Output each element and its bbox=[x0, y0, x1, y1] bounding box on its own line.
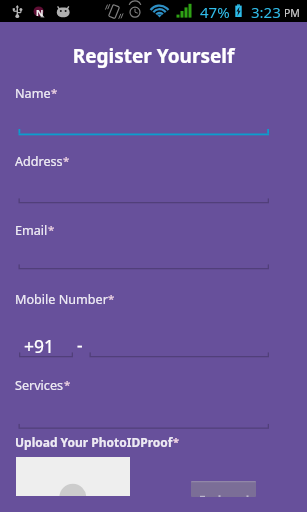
staticText: * bbox=[51, 85, 58, 101]
button[interactable] bbox=[191, 481, 256, 497]
staticText: Email bbox=[15, 222, 48, 239]
button[interactable]: Email bbox=[18, 237, 269, 271]
staticText: 47% bbox=[200, 2, 230, 22]
button[interactable]: Name bbox=[18, 100, 269, 136]
staticText: * bbox=[108, 291, 115, 307]
staticText: Name bbox=[15, 85, 51, 102]
staticText: Mobile Number bbox=[15, 291, 108, 308]
staticText: Register Yourself bbox=[0, 43, 307, 69]
staticText: Address bbox=[15, 153, 63, 170]
button[interactable]: Address bbox=[18, 168, 269, 204]
staticText: Upload Your PhotoIDProof bbox=[15, 434, 173, 450]
staticText: PM bbox=[284, 6, 300, 20]
staticText: * bbox=[48, 222, 55, 238]
button[interactable]: Photo ID proof preview bbox=[16, 457, 130, 496]
staticText: +91 bbox=[24, 334, 55, 358]
staticText: * bbox=[64, 377, 71, 393]
staticText: * bbox=[63, 153, 70, 169]
staticText: N bbox=[36, 6, 44, 18]
staticText: - bbox=[77, 333, 83, 357]
staticText: Services bbox=[15, 377, 64, 394]
staticText: 3:23 bbox=[251, 2, 281, 22]
button[interactable]: Mobile number bbox=[89, 331, 269, 358]
staticText: * bbox=[173, 434, 179, 449]
button[interactable]: Services bbox=[18, 394, 269, 430]
button[interactable]: +91 bbox=[19, 331, 73, 358]
